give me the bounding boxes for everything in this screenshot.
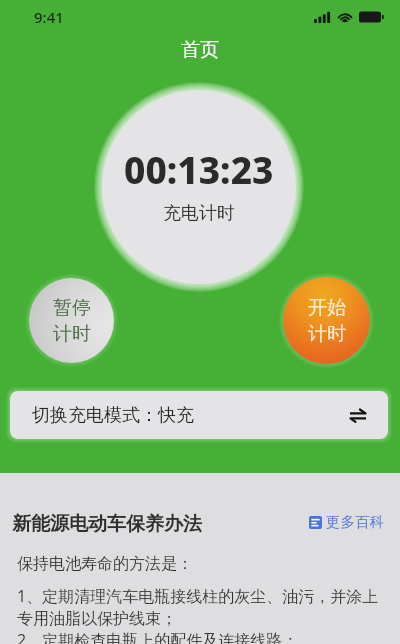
button[interactable]: 新能源电动车保养办法: [12, 512, 202, 536]
staticText: 充电计时: [163, 202, 235, 225]
other: 切换充电模式: [350, 409, 366, 422]
staticText: 计时: [308, 322, 346, 346]
staticText: 00:13:23: [124, 144, 274, 194]
staticText: 计时: [53, 322, 91, 346]
staticText: 1、定期清理汽车电瓶接线柱的灰尘、油污，并涂上专用油脂以保护线束；: [17, 585, 383, 629]
staticText: 9:41: [34, 7, 64, 27]
button[interactable]: 开始: [283, 277, 370, 364]
staticText: 更多百科: [326, 513, 384, 531]
staticText: 新能源电动车保养办法: [12, 512, 202, 536]
staticText: 切换充电模式：快充: [32, 404, 194, 427]
staticText: 开始: [308, 296, 346, 320]
staticText: 保持电池寿命的方法是：: [17, 554, 193, 574]
button[interactable]: 更多百科: [309, 513, 384, 531]
button[interactable]: 暂停: [29, 278, 114, 363]
staticText: 暂停: [53, 296, 91, 320]
staticText: 首页: [181, 38, 219, 62]
button[interactable]: 切换充电模式：快充: [10, 391, 388, 439]
staticText: 2、定期检查电瓶上的配件及连接线路；: [17, 629, 299, 644]
